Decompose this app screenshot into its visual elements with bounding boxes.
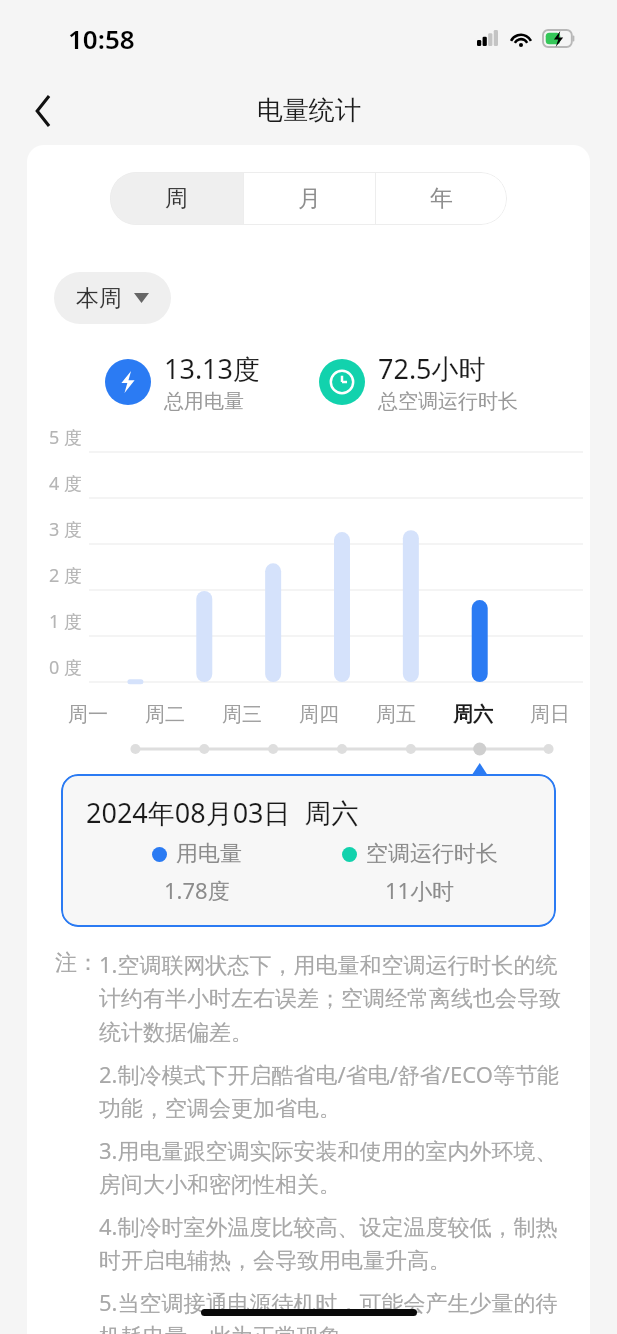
staticText: 注： [55, 949, 99, 977]
staticText: 电量统计 [257, 94, 361, 127]
staticText: 5 度 [49, 425, 82, 450]
staticText: 周日 [530, 702, 570, 727]
staticText: 年 [430, 184, 453, 213]
staticText: 空调运行时长 [366, 840, 498, 868]
staticText: 3.用电量跟空调实际安装和使用的室内外环境、房间大小和密闭性相关。 [99, 1135, 564, 1199]
staticText: 1.78度 [164, 875, 230, 905]
staticText: 10:58 [68, 21, 135, 56]
staticText: 周五 [376, 702, 416, 727]
staticText: 周三 [222, 702, 262, 727]
button[interactable]: 2024年08月03日 周六 [61, 774, 556, 927]
button[interactable]: 月 [243, 172, 375, 225]
staticText: 3 度 [49, 517, 82, 542]
staticText: 总空调运行时长 [378, 389, 518, 414]
button[interactable]: 年 [375, 172, 507, 225]
staticText: 1.空调联网状态下，用电量和空调运行时长的统计约有半小时左右误差；空调经常离线也… [99, 949, 564, 1047]
staticText: 1 度 [49, 609, 82, 634]
staticText: 本周 [76, 284, 122, 313]
staticText: 周四 [299, 702, 339, 727]
staticText: 月 [298, 184, 321, 213]
staticText: 4 度 [49, 471, 82, 496]
staticText: 0 度 [49, 655, 82, 680]
staticText: 4.制冷时室外温度比较高、设定温度较低，制热时开启电辅热，会导致用电量升高。 [99, 1211, 564, 1275]
staticText: 周 [165, 184, 188, 213]
staticText: 总用电量 [164, 389, 244, 414]
staticText: 2.制冷模式下开启酷省电/省电/舒省/ECO等节能功能，空调会更加省电。 [99, 1059, 564, 1123]
button[interactable]: Back [22, 89, 66, 133]
staticText: 5.当空调接通电源待机时，可能会产生少量的待机耗电量，此为正常现象。 [99, 1287, 564, 1334]
staticText: 用电量 [176, 840, 242, 868]
staticText: 周六 [453, 702, 493, 727]
staticText: 13.13度 [164, 350, 261, 387]
staticText: 2024年08月03日 周六 [86, 794, 359, 831]
button[interactable]: 周 [110, 172, 243, 225]
staticText: 72.5小时 [378, 350, 486, 387]
staticText: 2 度 [49, 563, 82, 588]
button[interactable]: 本周 [54, 272, 171, 324]
staticText: 周二 [145, 702, 185, 727]
staticText: 11小时 [385, 875, 455, 905]
staticText: 周一 [68, 702, 108, 727]
